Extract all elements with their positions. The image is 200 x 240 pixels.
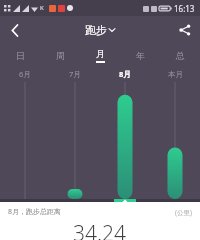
button[interactable]: 8月 [100,66,150,82]
staticText: 日 [16,50,25,61]
staticText: 8月，跑步总距离 [8,207,62,217]
button[interactable]: 跑步 [85,23,115,37]
button[interactable]: 6月 [0,66,50,82]
staticText: 周 [56,50,65,61]
button[interactable]: 本月 [150,66,200,82]
staticText: K [40,4,44,12]
staticText: 8月 [119,69,131,79]
button[interactable]: Back [0,16,30,44]
staticText: 6月 [19,69,31,79]
staticText: (公里) [175,208,192,217]
button[interactable]: 日 [0,44,40,66]
button[interactable]: 月 [80,44,120,66]
staticText: 本月 [168,70,183,79]
staticText: 跑步 [85,23,107,37]
staticText: 7月 [69,69,81,79]
button[interactable]: 年 [120,44,160,66]
button[interactable]: 周 [40,44,80,66]
staticText: 16:13 [174,3,195,14]
staticText: 月 [96,48,105,59]
staticText: 34.24 [73,219,127,240]
staticText: 总 [176,50,185,61]
button[interactable]: 总 [160,44,200,66]
button[interactable]: Share [170,16,200,44]
staticText: 年 [136,50,145,61]
button[interactable]: 7月 [50,66,100,82]
